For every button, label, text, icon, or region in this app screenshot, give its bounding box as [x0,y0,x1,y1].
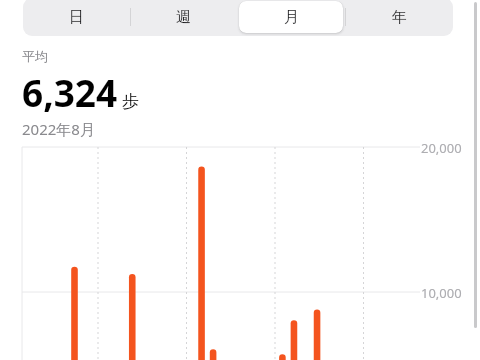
staticText: 歩 [122,91,139,112]
staticText: 平均 [22,48,48,64]
button[interactable]: 週 [130,0,237,36]
button[interactable]: 月 [237,0,345,36]
staticText: 20,000 [421,139,462,157]
staticText: 日 [69,8,84,27]
button[interactable]: 日 [23,0,130,36]
button[interactable]: 年 [345,0,453,36]
staticText: 2022年8月 [22,119,95,139]
staticText: 6,324 [22,67,118,117]
staticText: 年 [392,8,407,27]
staticText: 10,000 [421,284,462,302]
staticText: 週 [176,8,191,27]
staticText: 月 [284,8,299,27]
